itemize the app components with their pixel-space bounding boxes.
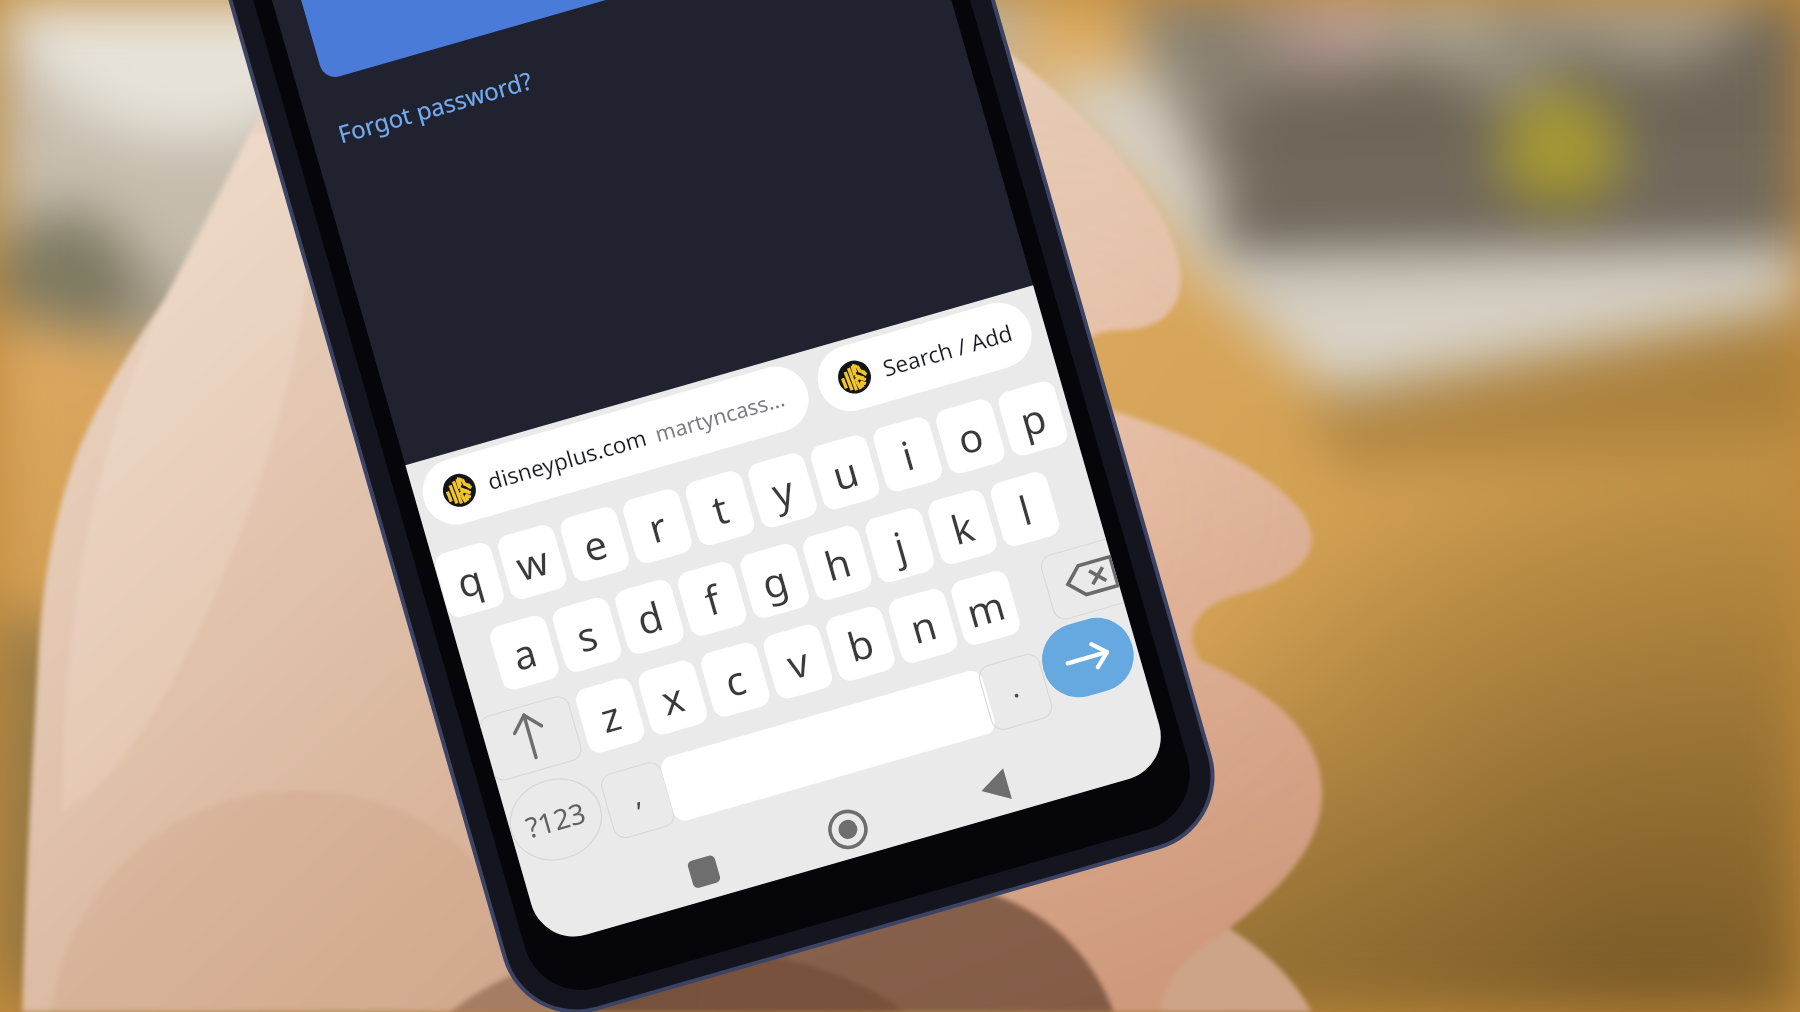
button[interactable]: x	[628, 667, 702, 747]
button[interactable]: Symbols ?123	[490, 782, 603, 886]
button[interactable]: f	[667, 568, 741, 648]
button[interactable]: Period	[969, 662, 1047, 742]
button[interactable]: k	[918, 496, 992, 576]
button[interactable]: q	[425, 549, 499, 629]
button[interactable]: e	[550, 513, 624, 593]
button[interactable]: l	[980, 478, 1054, 558]
button[interactable]: o	[925, 406, 999, 486]
button[interactable]: s	[542, 604, 616, 684]
button[interactable]: u	[800, 442, 874, 522]
button[interactable]: g	[730, 550, 804, 630]
button[interactable]: n	[878, 595, 952, 675]
button[interactable]: a	[479, 622, 553, 702]
button[interactable]: Enter	[1024, 622, 1136, 721]
button[interactable]: t	[675, 477, 749, 557]
button[interactable]: h	[792, 532, 866, 612]
button[interactable]: Comma	[591, 770, 669, 850]
button[interactable]: Space	[655, 714, 996, 872]
button[interactable]: Home	[803, 801, 879, 877]
button[interactable]: m	[941, 577, 1015, 657]
button[interactable]: Forgot password?	[333, 90, 541, 184]
button[interactable]: j	[855, 514, 929, 594]
button[interactable]: c	[690, 649, 764, 729]
button[interactable]: disneyplus.com martyncass... autofill su…	[412, 414, 816, 590]
button[interactable]: Back	[951, 759, 1027, 835]
button[interactable]: b	[816, 613, 890, 693]
button[interactable]: v	[753, 631, 827, 711]
button[interactable]: r	[612, 495, 686, 575]
button[interactable]: d	[605, 586, 679, 666]
button[interactable]: p	[988, 388, 1062, 468]
button[interactable]: Recent apps	[659, 844, 735, 920]
button[interactable]: w	[487, 531, 561, 611]
button[interactable]: y	[738, 459, 812, 539]
button[interactable]: i	[863, 424, 937, 504]
button[interactable]: z	[565, 685, 639, 765]
button[interactable]: Backspace	[1030, 546, 1139, 638]
button[interactable]: Shift	[469, 707, 578, 799]
button[interactable]: Search / Add	[804, 326, 1035, 452]
